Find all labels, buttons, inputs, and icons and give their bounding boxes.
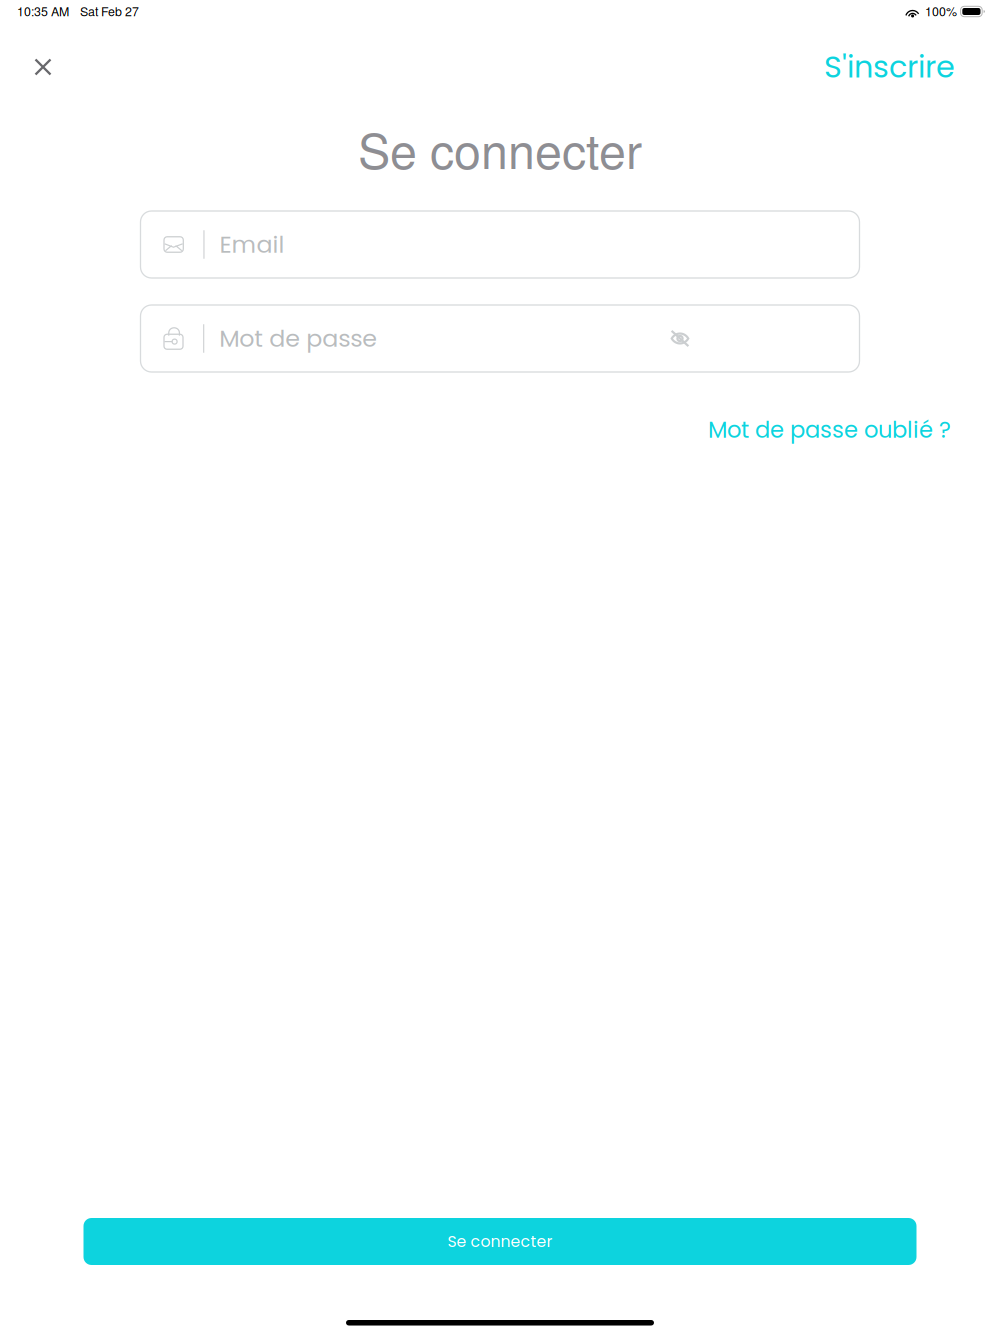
staticText: Se connecter [447, 1230, 552, 1252]
button[interactable]: Mot de passe [140, 305, 859, 372]
staticText: 10:35 AM [17, 2, 69, 20]
staticText: Email [220, 228, 285, 261]
staticText: 100% [925, 2, 957, 20]
staticText: Mot de passe oublié ? [708, 414, 951, 446]
button[interactable]: Mot de passe oublié ? [708, 409, 951, 451]
staticText: Se connecter [358, 113, 642, 183]
staticText: Mot de passe [219, 322, 377, 355]
button[interactable]: Close [19, 40, 67, 88]
staticText: Sat Feb 27 [80, 2, 139, 20]
button[interactable]: Show password [670, 330, 689, 347]
button[interactable]: Email [140, 211, 859, 278]
button[interactable]: Se connecter [83, 1218, 916, 1265]
button[interactable]: S'inscrire [824, 39, 955, 89]
staticText: S'inscrire [824, 46, 955, 88]
